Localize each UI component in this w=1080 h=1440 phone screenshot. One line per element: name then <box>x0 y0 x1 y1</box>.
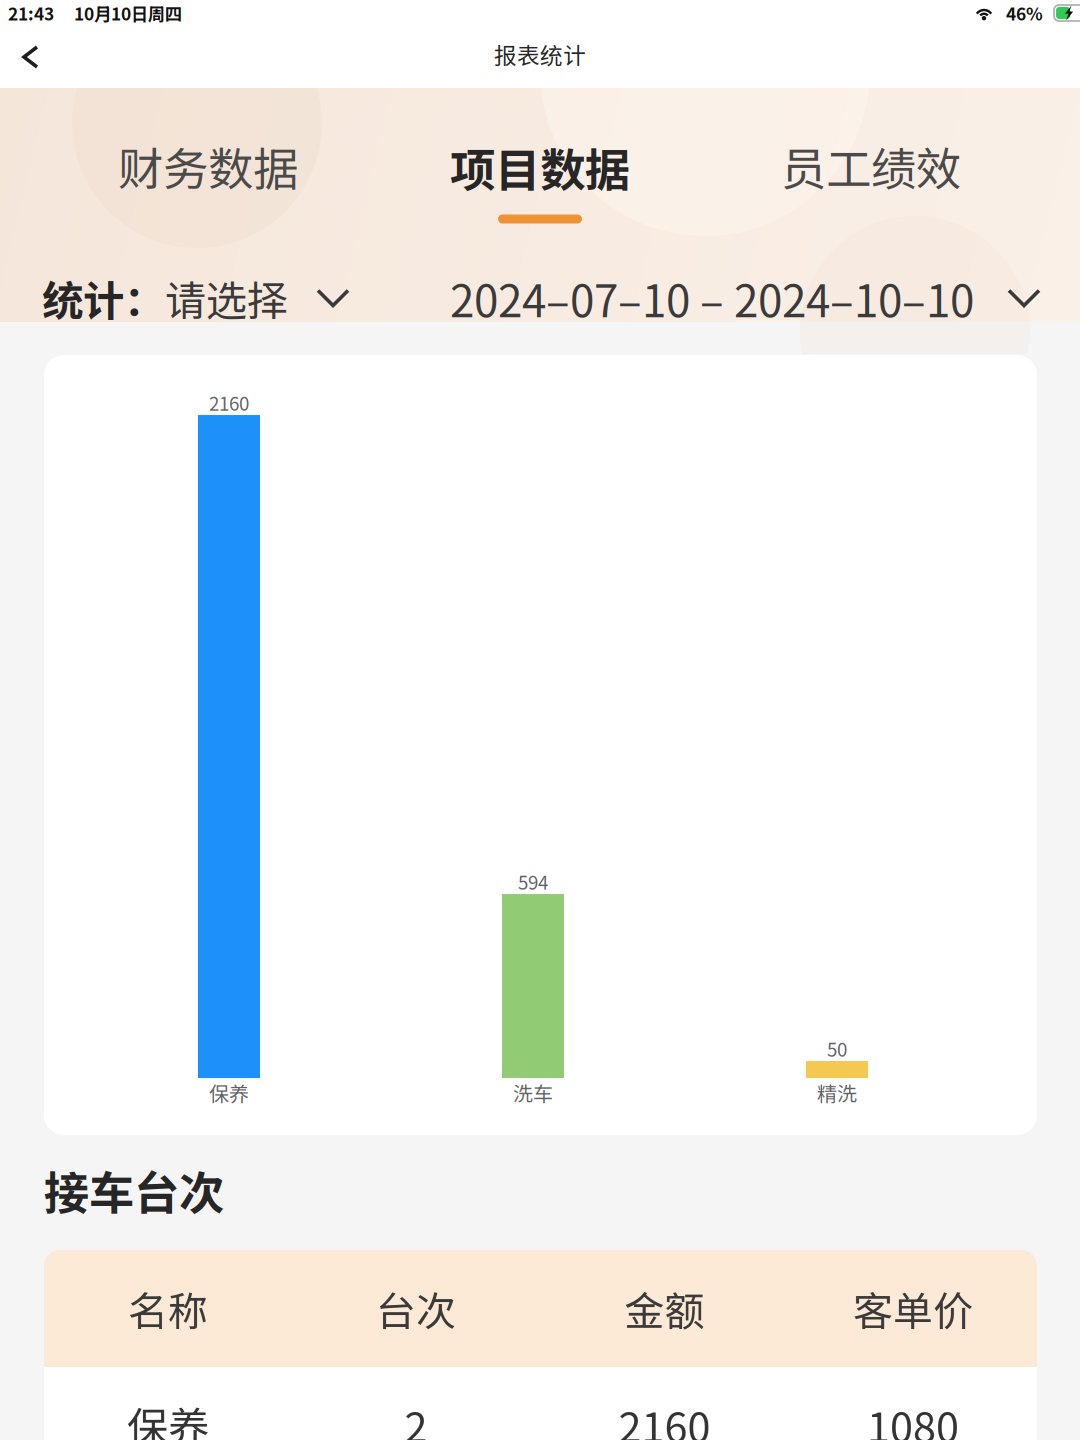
staticText: 2160 <box>618 1395 710 1440</box>
staticText: 员工绩效 <box>781 133 961 199</box>
staticText: 项目数据 <box>450 134 630 200</box>
staticText: 46% <box>1006 0 1043 26</box>
staticText: 保养 <box>127 1395 209 1440</box>
staticText: 报表统计 <box>494 38 586 70</box>
staticText: 2024–07–10 – 2024–10–10 <box>450 266 974 330</box>
staticText: 金额 <box>624 1279 704 1337</box>
staticText: 洗车 <box>513 1078 553 1107</box>
staticText: 统计： <box>42 268 165 328</box>
staticText: 客单价 <box>853 1279 973 1337</box>
button[interactable]: 员工绩效 <box>741 103 1001 229</box>
button[interactable]: 项目数据 <box>410 103 670 229</box>
staticText: 台次 <box>376 1279 456 1337</box>
staticText: 接车台次 <box>44 1157 224 1223</box>
staticText: 50 <box>827 1035 847 1062</box>
staticText: 名称 <box>128 1279 208 1337</box>
staticText: 1080 <box>867 1395 959 1440</box>
staticText: 财务数据 <box>118 133 298 199</box>
staticText: 21:43 <box>8 0 54 26</box>
staticText: 594 <box>518 868 548 895</box>
staticText: 10月10日周四 <box>74 0 182 26</box>
staticText: 2 <box>404 1395 427 1440</box>
button[interactable]: 返回 <box>0 29 69 85</box>
staticText: 2160 <box>209 389 249 416</box>
button[interactable]: 2024–07–10 – 2024–10–10 <box>454 258 1037 338</box>
button[interactable]: 统计： <box>42 258 372 338</box>
staticText: 请选择 <box>165 268 288 328</box>
staticText: 精洗 <box>817 1078 857 1107</box>
button[interactable]: 财务数据 <box>78 103 338 229</box>
staticText: 保养 <box>209 1078 249 1107</box>
